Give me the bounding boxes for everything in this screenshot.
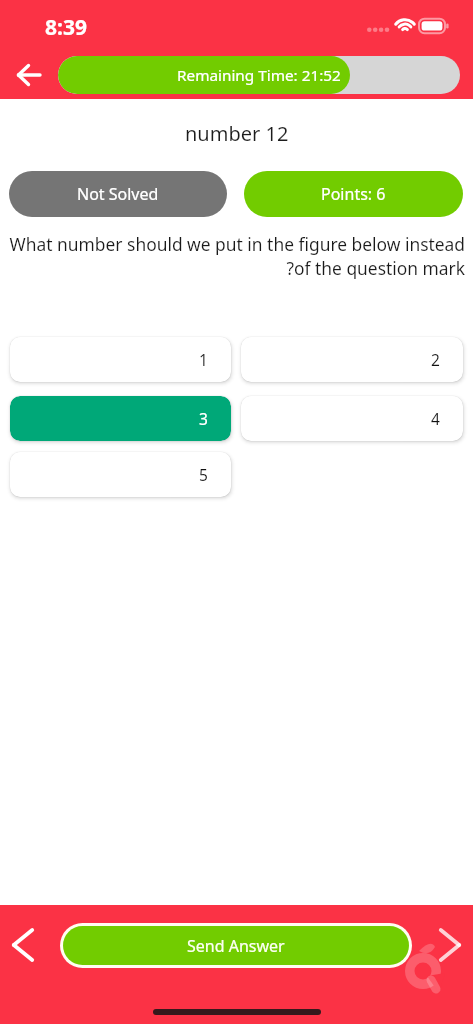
button[interactable]: 5 xyxy=(10,452,231,497)
staticText: What number should we put in the figure … xyxy=(7,232,465,256)
button[interactable]: Points: 6 xyxy=(244,171,463,217)
staticText: 2 xyxy=(431,349,440,370)
staticText: 1 xyxy=(199,349,208,370)
button[interactable]: Next question xyxy=(433,921,467,969)
button[interactable]: 3 xyxy=(10,396,231,441)
staticText: 4 xyxy=(431,408,440,429)
button[interactable]: Send Answer xyxy=(63,926,409,965)
staticText: Remaining Time: 21:52 xyxy=(177,65,341,86)
staticText: 8:39 xyxy=(45,13,87,39)
button[interactable]: Previous question xyxy=(8,923,38,967)
button[interactable]: 4 xyxy=(241,396,463,441)
staticText: Points: 6 xyxy=(321,183,386,205)
button[interactable]: 2 xyxy=(241,337,463,382)
button[interactable]: 1 xyxy=(10,337,231,382)
staticText: Send Answer xyxy=(187,935,285,957)
staticText: 3 xyxy=(199,408,208,429)
button[interactable]: Not Solved xyxy=(9,171,227,217)
staticText: number 12 xyxy=(185,120,289,147)
staticText: Not Solved xyxy=(77,183,159,205)
staticText: ?of the question mark xyxy=(7,256,465,280)
button[interactable]: Back xyxy=(0,56,58,94)
staticText: 5 xyxy=(199,464,208,485)
